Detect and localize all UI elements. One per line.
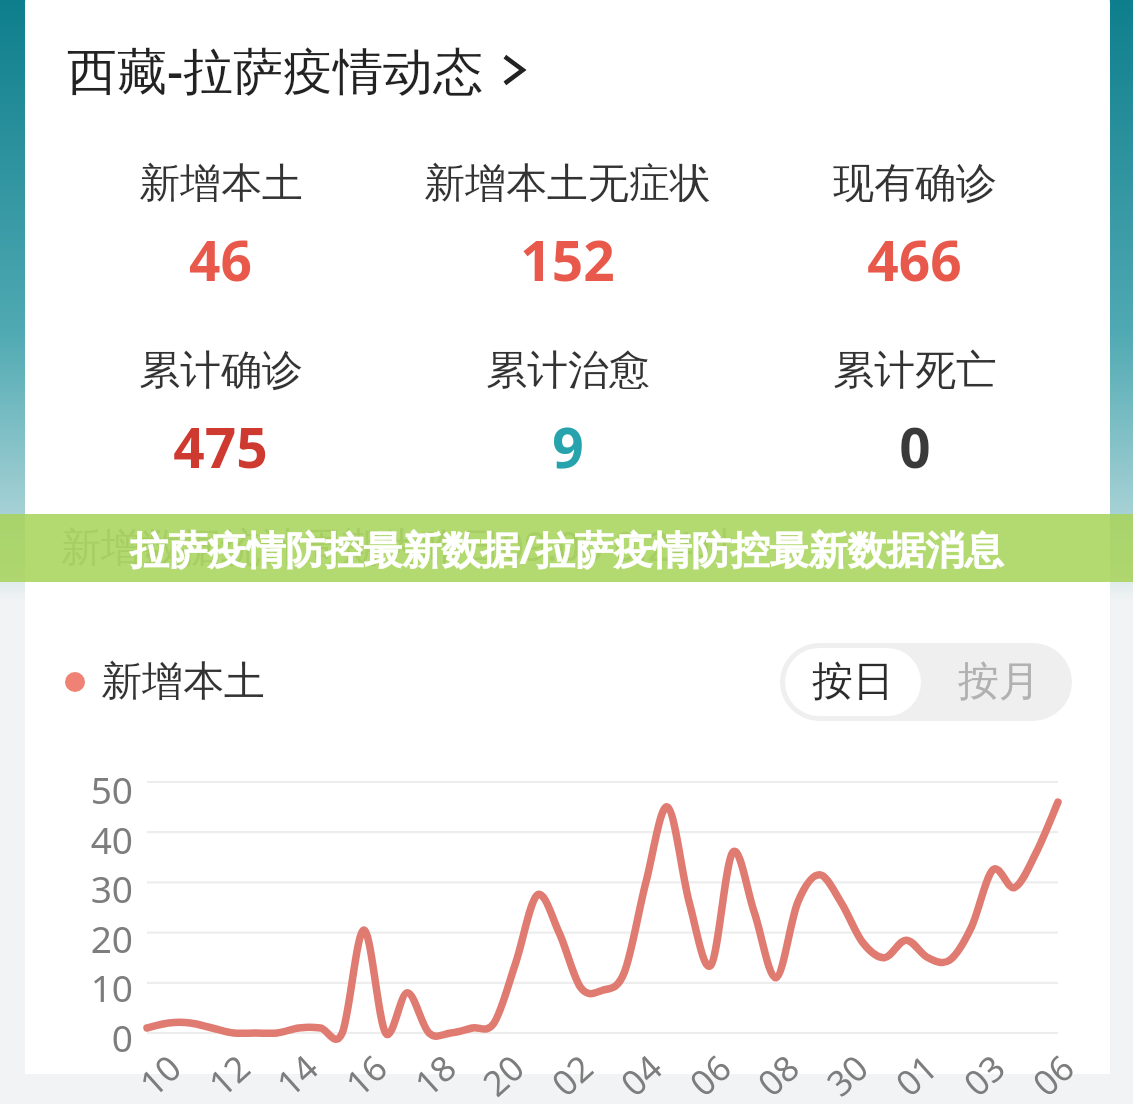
staticText: 按日 [812, 656, 894, 708]
staticText: 20 [90, 913, 133, 963]
staticText: 06 [679, 1043, 742, 1104]
staticText: 西藏-拉萨疫情动态 [67, 36, 484, 104]
staticText: 拉萨疫情防控最新数据/拉萨疫情防控最新数据消息 [129, 522, 1004, 575]
staticText: 20 [472, 1043, 535, 1104]
staticText: 08 [747, 1043, 810, 1104]
staticText: 0 [111, 1012, 133, 1062]
staticText: 466 [867, 222, 962, 297]
staticText: 16 [335, 1043, 398, 1104]
staticText: 30 [90, 863, 133, 913]
staticText: 0 [899, 409, 931, 484]
staticText: 10 [129, 1043, 192, 1104]
staticText: 新增数据统计周期为昨日09:06 0:24时 [61, 518, 733, 573]
staticText: 46 [189, 222, 252, 297]
staticText: 累计确诊 [139, 345, 303, 397]
staticText: 03 [953, 1043, 1016, 1104]
staticText: 现有确诊 [833, 158, 997, 210]
button[interactable]: 新增本土 [61, 650, 269, 714]
staticText: 02 [541, 1043, 604, 1104]
staticText: 14 [266, 1043, 329, 1104]
staticText: 新增本土无症状 [424, 158, 711, 210]
button[interactable]: 西藏-拉萨疫情动态 [67, 32, 552, 108]
button[interactable]: 拉萨疫情防控最新数据 [0, 514, 1133, 582]
staticText: 18 [404, 1043, 467, 1104]
staticText: 累计死亡 [833, 345, 997, 397]
button[interactable]: 累计死亡 [741, 343, 1088, 486]
staticText: 04 [610, 1043, 673, 1104]
staticText: 按月 [958, 656, 1040, 708]
button[interactable]: 按日 [785, 648, 921, 716]
staticText: 9 [552, 409, 584, 484]
button[interactable]: 按月 [926, 643, 1072, 721]
staticText: 新增本土 [101, 656, 265, 708]
button[interactable]: 累计治愈 [394, 343, 741, 486]
staticText: 40 [90, 814, 133, 864]
staticText: 01 [885, 1043, 948, 1104]
staticText: 12 [198, 1043, 261, 1104]
button[interactable]: 新增本土 [47, 156, 394, 299]
button[interactable]: 累计确诊 [47, 343, 394, 486]
button[interactable]: 新增本土无症状 [394, 156, 741, 299]
staticText: 10 [90, 962, 133, 1012]
staticText: 30 [816, 1043, 879, 1104]
staticText: 50 [90, 764, 133, 814]
staticText: 152 [520, 222, 615, 297]
staticText: 06 [1022, 1043, 1085, 1104]
button[interactable]: 现有确诊 [741, 156, 1088, 299]
staticText: 累计治愈 [486, 345, 650, 397]
staticText: 新增本土 [139, 158, 303, 210]
staticText: 475 [173, 409, 268, 484]
